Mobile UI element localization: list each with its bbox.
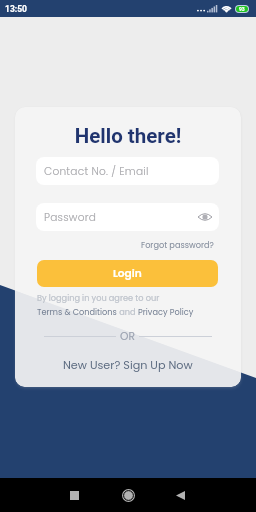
- staticText: 13:50: [5, 4, 27, 14]
- button[interactable]: Password: [36, 203, 219, 231]
- button[interactable]: Home: [116, 483, 140, 507]
- staticText: 93: [239, 6, 245, 12]
- button[interactable]: Login: [37, 260, 218, 287]
- button[interactable]: Terms & Conditions: [37, 306, 117, 317]
- button[interactable]: Recent apps: [62, 483, 86, 507]
- staticText: and: [117, 306, 138, 317]
- button[interactable]: New User? Sign Up Now: [15, 355, 241, 375]
- button[interactable]: Contact No. / Email: [36, 157, 219, 185]
- staticText: By logging in you agree to our: [37, 292, 160, 303]
- staticText: New User? Sign Up Now: [63, 357, 193, 373]
- staticText: OR: [120, 329, 135, 343]
- button[interactable]: Forgot password?: [125, 237, 214, 251]
- staticText: Login: [113, 266, 142, 281]
- staticText: Forgot password?: [141, 239, 214, 250]
- staticText: Hello there!: [15, 124, 241, 148]
- other: Show password: [198, 212, 212, 222]
- button[interactable]: Back: [168, 483, 192, 507]
- staticText: Contact No. / Email: [44, 164, 149, 179]
- button[interactable]: Privacy Policy: [138, 306, 194, 317]
- staticText: Password: [44, 210, 97, 225]
